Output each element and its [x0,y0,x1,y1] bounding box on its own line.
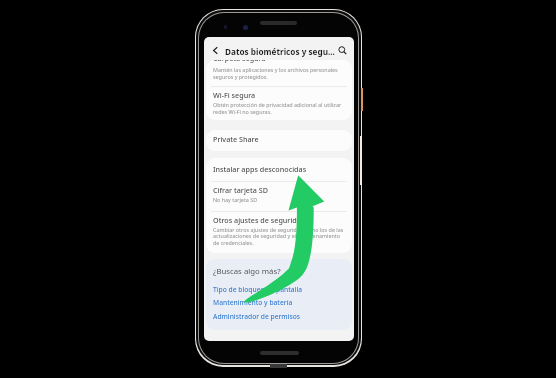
button[interactable]: Private Share [206,130,352,151]
staticText: de credenciales. [213,239,254,246]
staticText: Otros ajustes de seguridad [213,215,306,225]
staticText: ¿Buscas algo más? [213,266,281,277]
button[interactable]: Carpeta segura [206,60,352,120]
staticText: Instalar apps desconocidas [213,164,307,174]
staticText: Tipo de bloqueo de pantalla [213,285,303,294]
staticText: Administrador de permisos [213,312,301,321]
staticText: Private Share [213,134,259,144]
staticText: seguros y protegidos. [213,73,268,80]
staticText: Cifrar tarjeta SD [213,185,268,195]
button[interactable]: Back [208,43,222,57]
button[interactable]: Tipo de bloqueo de pantalla [213,285,303,294]
button[interactable]: Mantenimiento y batería [213,298,293,307]
staticText: Datos biométricos y segu... [225,46,335,57]
staticText: actualizaciones de seguridad y el almace… [213,232,341,239]
staticText: Obtén protección de privacidad adicional… [213,101,342,108]
button[interactable]: Instalar apps desconocidas [206,158,352,253]
staticText: Carpeta segura [213,60,266,63]
staticText: Mantenimiento y batería [213,298,293,307]
staticText: No hay tarjeta SD [213,196,258,203]
staticText: Cambiar otros ajustes de seguridad como … [213,226,344,233]
staticText: Mantén las aplicaciones y los archivos p… [213,66,338,73]
button[interactable]: Search [335,43,349,57]
button[interactable]: Administrador de permisos [213,312,301,321]
staticText: redes Wi-Fi no seguras. [213,108,272,115]
staticText: Wi-Fi segura [213,90,256,100]
